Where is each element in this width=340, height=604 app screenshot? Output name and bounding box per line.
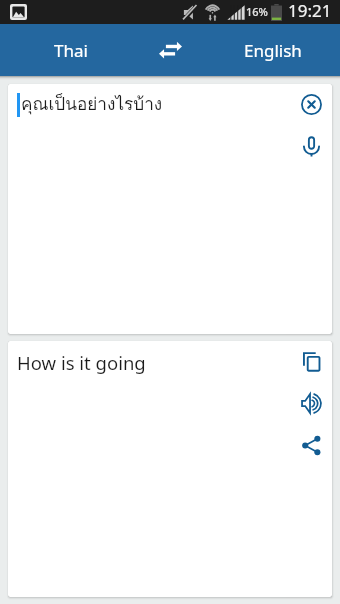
- staticText: 19:21: [288, 0, 332, 22]
- button[interactable]: Clear text: [291, 84, 331, 124]
- staticText: 16%: [246, 4, 268, 19]
- button[interactable]: How is it going: [8, 341, 332, 597]
- button[interactable]: Swap languages: [134, 24, 206, 76]
- button[interactable]: English: [206, 24, 340, 76]
- staticText: Thai: [54, 39, 88, 62]
- button[interactable]: Copy: [291, 341, 331, 381]
- staticText: How is it going: [17, 350, 146, 375]
- button[interactable]: Voice input: [291, 126, 331, 166]
- staticText: คุณเป็นอย่างไรบ้าง: [21, 90, 163, 117]
- button[interactable]: Thai: [0, 24, 134, 76]
- button[interactable]: Share: [291, 425, 331, 465]
- button[interactable]: Listen: [291, 383, 331, 423]
- button[interactable]: คุณเป็นอย่างไรบ้าง: [8, 84, 332, 334]
- staticText: English: [244, 39, 302, 62]
